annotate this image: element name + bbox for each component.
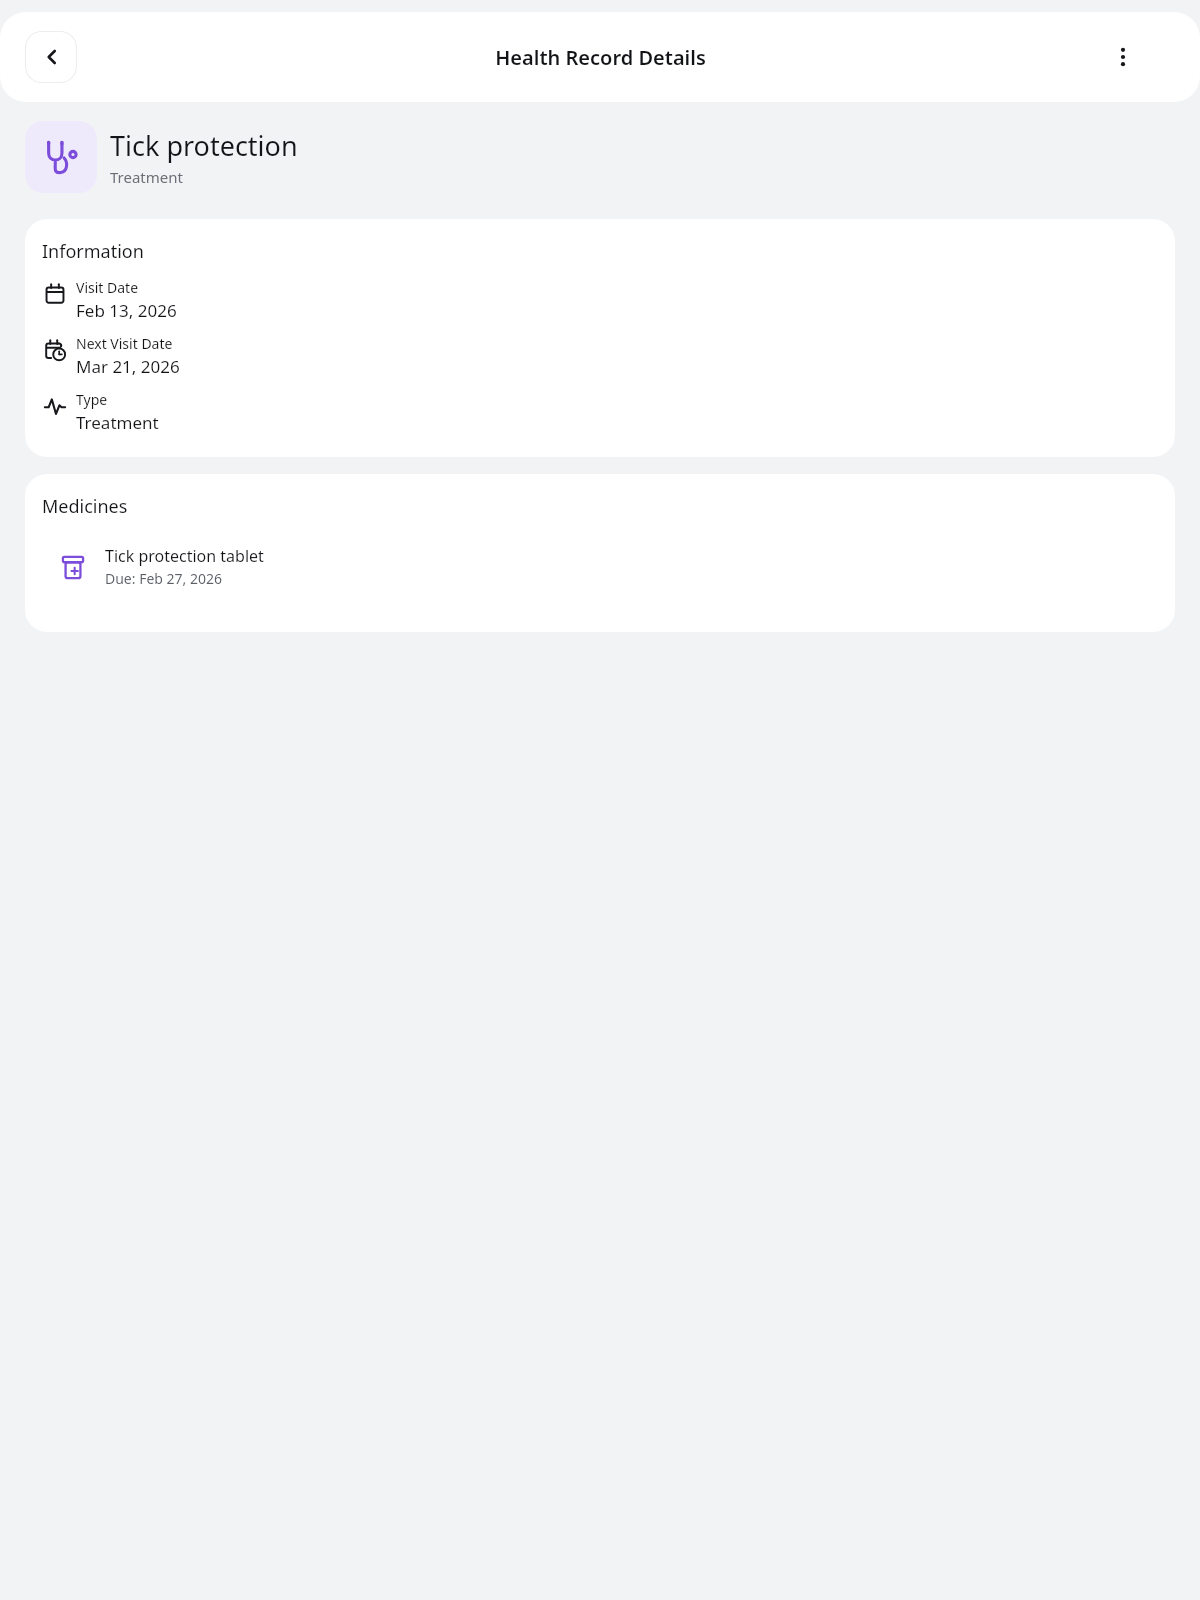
staticText: Visit Date — [76, 278, 139, 297]
staticText: Type — [76, 390, 108, 409]
button[interactable]: Back — [25, 31, 77, 83]
staticText: Next Visit Date — [76, 334, 173, 353]
staticText: Treatment — [76, 411, 159, 434]
staticText: Mar 21, 2026 — [76, 355, 180, 378]
staticText: Feb 13, 2026 — [76, 299, 177, 322]
staticText: Health Record Details — [495, 44, 706, 71]
staticText: Due: Feb 27, 2026 — [105, 569, 223, 588]
staticText: Information — [42, 239, 144, 264]
staticText: Tick protection — [110, 127, 298, 164]
staticText: Tick protection tablet — [105, 545, 264, 567]
button[interactable]: Tick protection tablet — [42, 545, 1158, 588]
staticText: Treatment — [110, 167, 183, 187]
button[interactable]: More options — [1101, 35, 1145, 79]
staticText: Medicines — [42, 494, 128, 519]
